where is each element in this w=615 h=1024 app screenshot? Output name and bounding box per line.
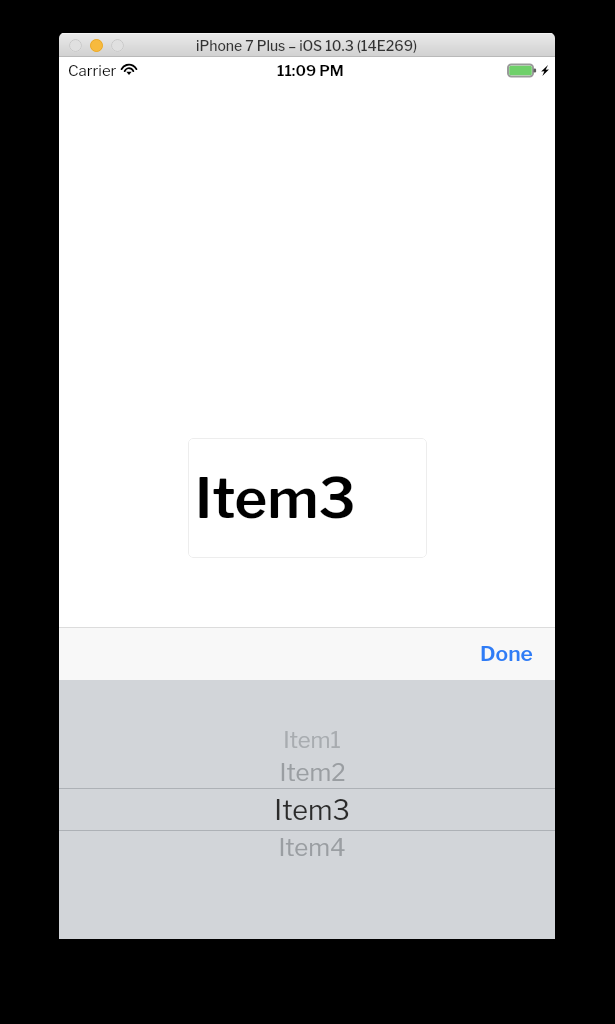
staticText: Done — [480, 641, 533, 666]
staticText: Carrier — [68, 62, 117, 80]
button[interactable]: Item2 — [64, 753, 560, 791]
button[interactable]: Minimize window — [90, 39, 103, 52]
staticText: Item2 — [279, 758, 346, 787]
button[interactable]: Close window — [69, 39, 82, 52]
staticText: Item4 — [278, 833, 346, 862]
staticText: Item1 — [283, 727, 341, 754]
other: Wi-Fi — [120, 61, 138, 75]
button[interactable]: Item3 — [188, 438, 427, 558]
other: Battery charging — [507, 64, 537, 77]
staticText: Item3 — [274, 794, 350, 827]
button[interactable]: Item1 — [64, 721, 560, 759]
button[interactable]: Done — [456, 629, 555, 678]
button[interactable]: Item3 — [64, 791, 560, 829]
staticText: iPhone 7 Plus – iOS 10.3 (14E269) — [196, 37, 418, 54]
button[interactable]: Item4 — [64, 828, 560, 866]
staticText: 11:09 PM — [277, 62, 344, 80]
staticText: Item3 — [195, 464, 356, 532]
button[interactable]: Zoom window — [111, 39, 124, 52]
